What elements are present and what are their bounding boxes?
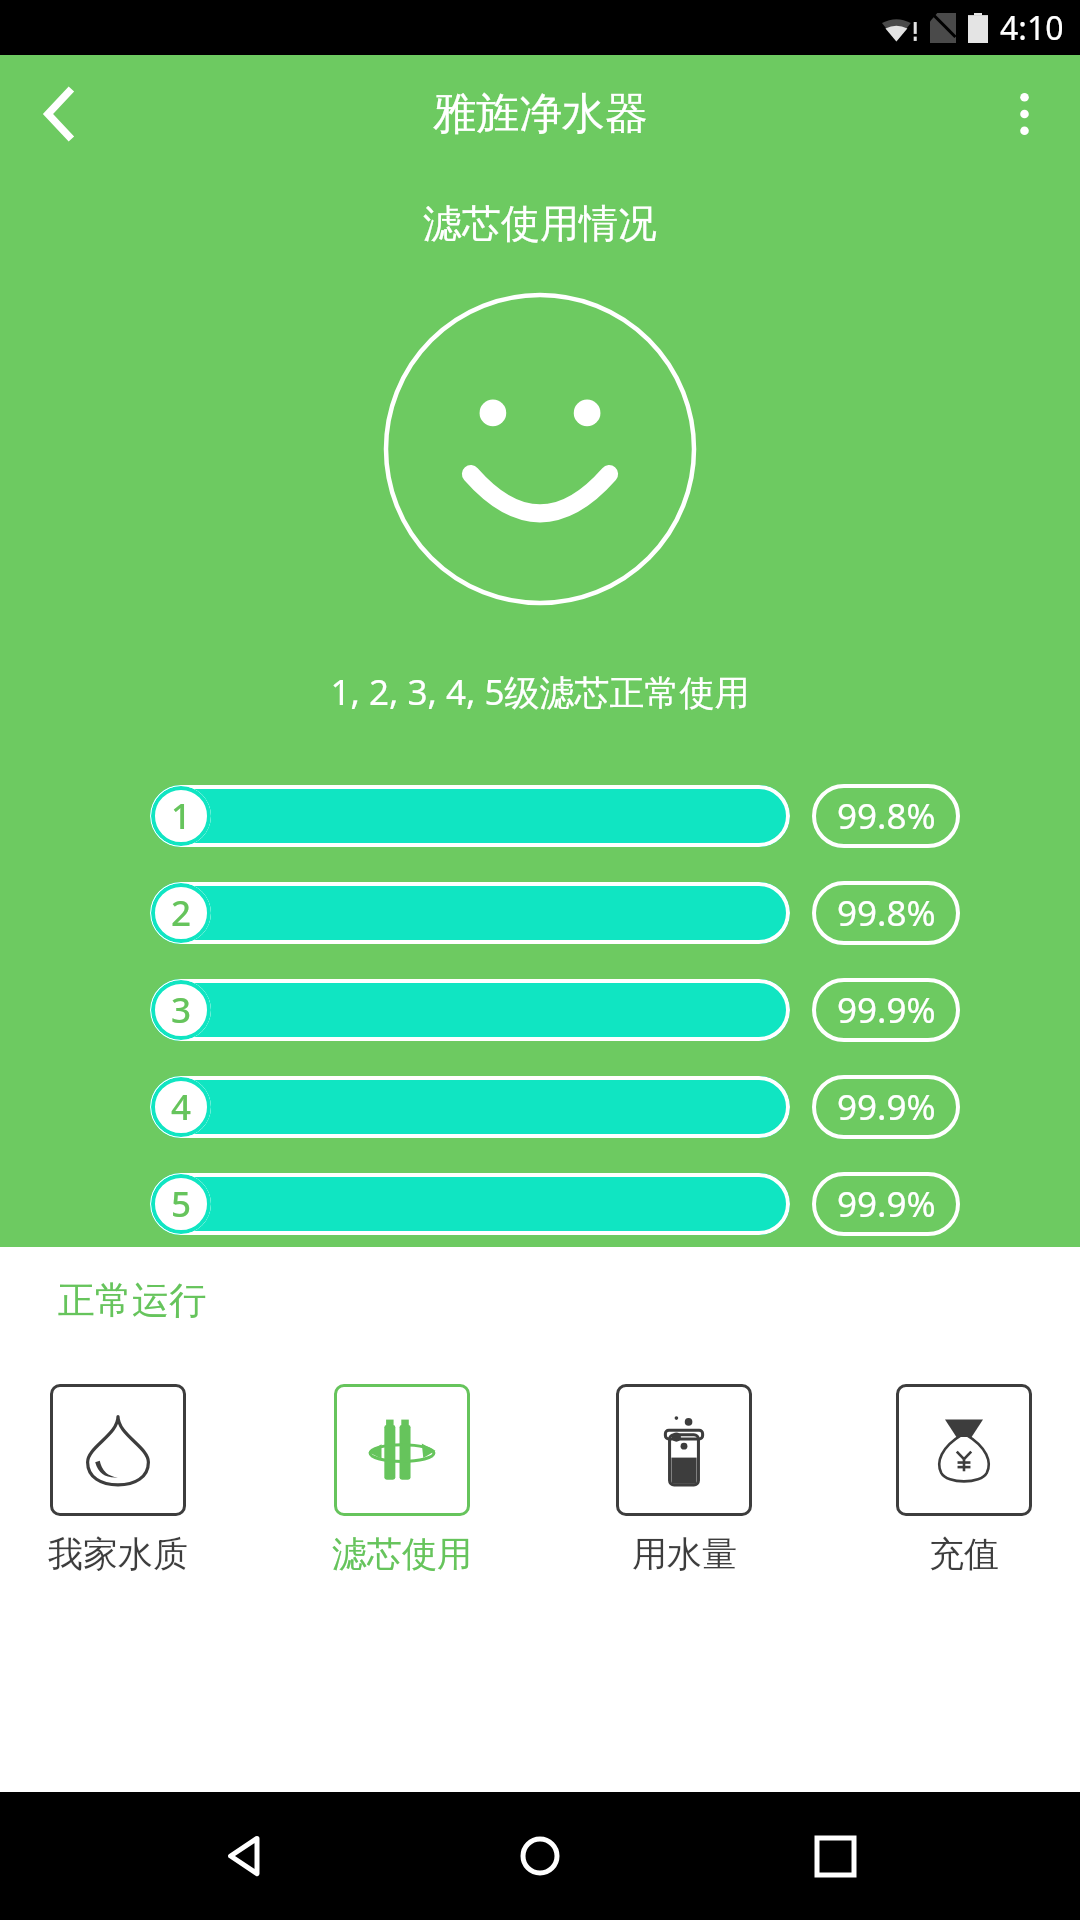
button[interactable]: Recent apps — [785, 1806, 885, 1906]
staticText: 3 — [171, 986, 192, 1034]
button[interactable]: 我家水质 — [48, 1384, 188, 1576]
staticText: 99.9% — [837, 986, 936, 1034]
button[interactable]: 4 — [150, 1076, 790, 1138]
button[interactable]: 5 — [150, 1173, 790, 1235]
staticText: 雅旌净水器 — [433, 87, 648, 141]
button[interactable]: 99.9% — [812, 1172, 960, 1236]
staticText: 5 — [171, 1180, 192, 1228]
button[interactable]: 1 — [150, 785, 790, 847]
button[interactable]: 3 — [150, 979, 790, 1041]
staticText: 4:10 — [1000, 6, 1064, 50]
button[interactable]: Back — [22, 76, 98, 152]
staticText: 99.9% — [837, 1083, 936, 1131]
button[interactable]: 99.8% — [812, 784, 960, 848]
button[interactable]: 99.9% — [812, 978, 960, 1042]
button[interactable]: 2 — [150, 882, 790, 944]
staticText: 2 — [171, 889, 192, 937]
button[interactable]: 滤芯使用 — [332, 1384, 472, 1576]
staticText: 我家水质 — [48, 1532, 188, 1576]
button[interactable]: Home — [490, 1806, 590, 1906]
staticText: 滤芯使用情况 — [0, 199, 1080, 248]
staticText: 充值 — [929, 1532, 999, 1576]
staticText: 1, 2, 3, 4, 5级滤芯正常使用 — [0, 668, 1080, 716]
staticText: 99.9% — [837, 1180, 936, 1228]
staticText: 正常运行 — [58, 1277, 206, 1324]
button[interactable]: 充值 — [896, 1384, 1032, 1576]
button[interactable]: 99.9% — [812, 1075, 960, 1139]
staticText: 99.8% — [837, 792, 936, 840]
staticText: 1 — [171, 792, 192, 840]
button[interactable]: Back — [195, 1806, 295, 1906]
staticText: 99.8% — [837, 889, 936, 937]
button[interactable]: 用水量 — [616, 1384, 752, 1576]
button[interactable]: More options — [986, 76, 1062, 152]
staticText: 4 — [171, 1083, 192, 1131]
staticText: 滤芯使用 — [332, 1532, 472, 1576]
staticText: 用水量 — [632, 1532, 737, 1576]
button[interactable]: 99.8% — [812, 881, 960, 945]
